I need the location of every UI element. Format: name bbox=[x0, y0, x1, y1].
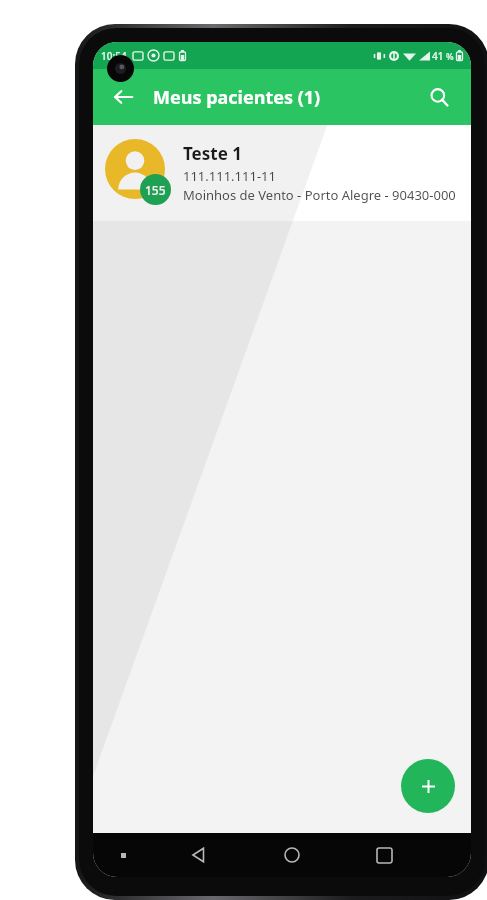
button[interactable]: Back bbox=[101, 75, 145, 119]
button[interactable]: Search bbox=[417, 75, 461, 119]
button[interactable]: Recents bbox=[338, 833, 431, 877]
button[interactable]: Menu bbox=[93, 833, 153, 877]
staticText: 41 bbox=[432, 49, 444, 63]
staticText: 111.111.111-11 bbox=[183, 167, 276, 185]
staticText: Teste 1 bbox=[183, 142, 242, 165]
button[interactable]: 155 bbox=[93, 125, 471, 221]
staticText: Meus pacientes (1) bbox=[153, 85, 321, 110]
button[interactable]: Home bbox=[245, 833, 338, 877]
button[interactable]: Add patient bbox=[401, 759, 455, 813]
staticText: 10:54 bbox=[101, 49, 127, 63]
staticText: % bbox=[446, 50, 454, 62]
staticText: Moinhos de Vento - Porto Alegre - 90430-… bbox=[183, 186, 456, 204]
button[interactable]: Back bbox=[153, 833, 245, 877]
staticText: 155 bbox=[145, 182, 166, 198]
